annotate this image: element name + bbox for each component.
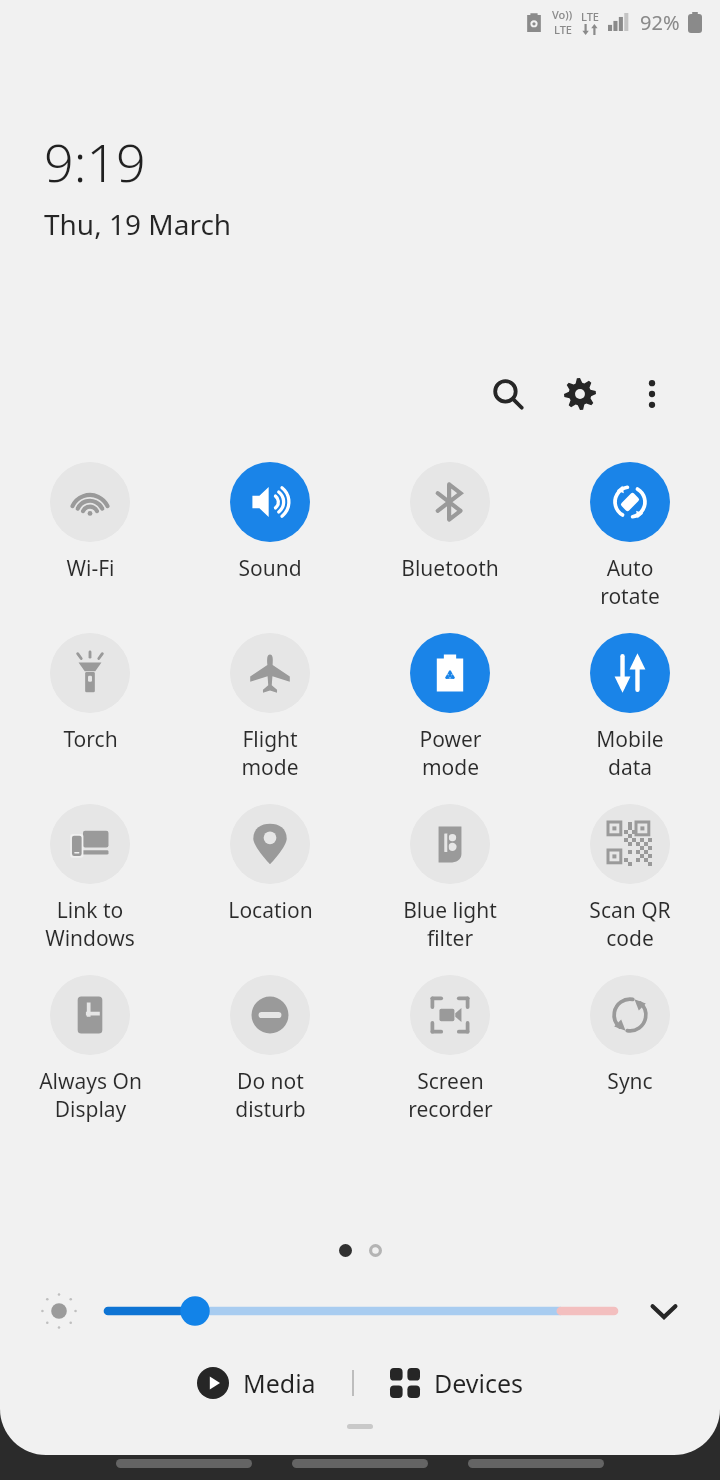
- staticText: 9:19: [44, 126, 146, 197]
- button[interactable]: Expand: [636, 1283, 692, 1339]
- button[interactable]: Do not disturb: [180, 973, 360, 1123]
- staticText: Sync: [607, 1067, 653, 1096]
- staticText: Blue light filter: [403, 896, 497, 952]
- staticText: Devices: [434, 1366, 524, 1400]
- button[interactable]: Always On Display: [0, 973, 180, 1123]
- button[interactable]: Wi-Fi: [0, 460, 180, 583]
- staticText: Flight mode: [241, 725, 299, 781]
- button[interactable]: Link to Windows: [0, 802, 180, 952]
- button[interactable]: Location: [180, 802, 360, 925]
- staticText: Do not disturb: [235, 1067, 306, 1123]
- button[interactable]: Navigation: [468, 1459, 604, 1468]
- button[interactable]: Blue light filter: [360, 802, 540, 952]
- staticText: Power mode: [419, 725, 482, 781]
- button[interactable]: Navigation: [116, 1459, 252, 1468]
- staticText: 92%: [640, 9, 680, 36]
- staticText: Always On Display: [39, 1067, 142, 1123]
- staticText: Link to Windows: [45, 896, 135, 952]
- staticText: LTE: [554, 22, 572, 37]
- button[interactable]: Bluetooth: [360, 460, 540, 583]
- staticText: Media: [243, 1366, 316, 1400]
- button[interactable]: Brightness: [108, 1289, 614, 1333]
- staticText: Vo)): [552, 7, 573, 22]
- staticText: Sound: [238, 554, 302, 583]
- button[interactable]: Search: [476, 362, 540, 426]
- button[interactable]: Flight mode: [180, 631, 360, 781]
- staticText: Auto rotate: [600, 554, 660, 610]
- button[interactable]: Scan QR code: [540, 802, 720, 952]
- staticText: Bluetooth: [401, 554, 499, 583]
- button[interactable]: More options: [620, 362, 684, 426]
- button[interactable]: Sync: [540, 973, 720, 1096]
- button[interactable]: Page 1: [339, 1244, 352, 1257]
- button[interactable]: Screen recorder: [360, 973, 540, 1123]
- button[interactable]: Devices: [376, 1358, 538, 1408]
- staticText: Scan QR code: [589, 896, 671, 952]
- staticText: Wi-Fi: [66, 554, 115, 583]
- button[interactable]: Sound: [180, 460, 360, 583]
- button[interactable]: Settings: [548, 362, 612, 426]
- button[interactable]: Auto rotate: [540, 460, 720, 610]
- staticText: Location: [228, 896, 313, 925]
- staticText: Screen recorder: [408, 1067, 493, 1123]
- staticText: Torch: [63, 725, 118, 754]
- staticText: LTE: [581, 9, 599, 24]
- staticText: Mobile data: [596, 725, 664, 781]
- button[interactable]: Media: [183, 1358, 330, 1408]
- button[interactable]: Power mode: [360, 631, 540, 781]
- button[interactable]: Mobile data: [540, 631, 720, 781]
- button[interactable]: Page 2: [369, 1244, 382, 1257]
- button[interactable]: Torch: [0, 631, 180, 754]
- button[interactable]: Navigation: [292, 1459, 428, 1468]
- staticText: Thu, 19 March: [44, 205, 232, 243]
